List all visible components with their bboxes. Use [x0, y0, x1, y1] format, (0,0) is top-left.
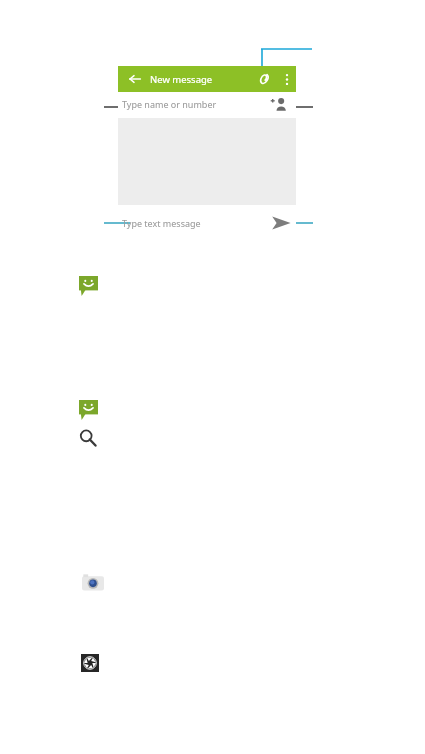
button[interactable]: More options — [278, 66, 296, 92]
staticText: New message — [150, 73, 213, 86]
staticText: Type text message — [122, 217, 201, 229]
button[interactable]: Search — [79, 429, 97, 447]
button[interactable]: Gallery — [81, 654, 99, 672]
button[interactable]: Back — [124, 66, 146, 92]
button[interactable]: Add contact — [270, 96, 288, 112]
button[interactable]: Type name or number — [118, 92, 296, 114]
button[interactable]: Attach — [252, 66, 276, 92]
button[interactable]: Messaging — [79, 276, 98, 296]
button[interactable]: Send — [268, 211, 294, 235]
button[interactable]: Camera — [82, 574, 104, 592]
button[interactable]: Type text message — [118, 210, 278, 236]
button[interactable]: Messaging — [79, 400, 98, 420]
staticText: Type name or number — [122, 98, 217, 110]
